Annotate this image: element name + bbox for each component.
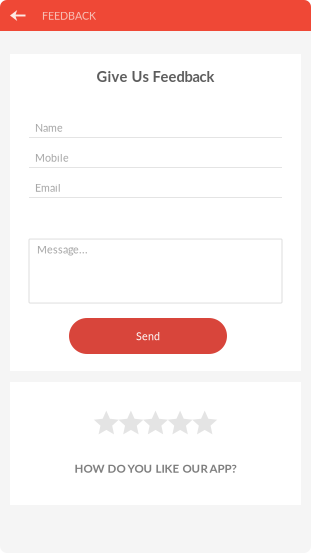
staticText: Name <box>35 121 63 134</box>
button[interactable]: Back <box>0 0 42 31</box>
staticText: Message... <box>37 243 88 256</box>
staticText: FEEDBACK <box>42 9 96 22</box>
staticText: Mobile <box>35 151 69 164</box>
staticText: HOW DO YOU LIKE OUR APP? <box>74 461 236 475</box>
staticText: Send <box>136 330 160 342</box>
staticText: Give Us Feedback <box>96 67 214 85</box>
staticText: Email <box>35 181 61 194</box>
button[interactable]: Send <box>69 318 227 354</box>
